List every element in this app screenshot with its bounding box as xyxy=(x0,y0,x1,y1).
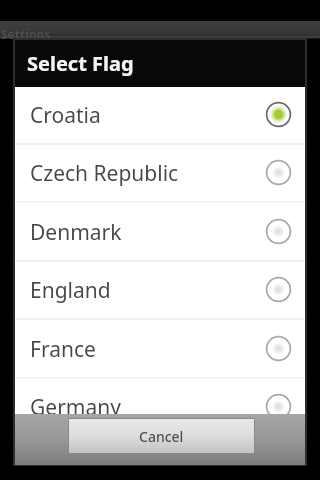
staticText: France xyxy=(30,335,265,364)
staticText: Select Flag xyxy=(27,50,134,77)
staticText: Croatia xyxy=(30,101,265,130)
button[interactable]: Cancel xyxy=(69,419,254,453)
staticText: Czech Republic xyxy=(30,159,265,188)
button[interactable]: Czech Republic xyxy=(15,145,305,203)
button[interactable]: Croatia xyxy=(15,87,305,145)
button[interactable]: France xyxy=(15,321,305,379)
button[interactable]: Germany xyxy=(15,379,305,437)
other: Not selected xyxy=(265,159,292,186)
staticText: Denmark xyxy=(30,218,265,247)
staticText: England xyxy=(30,276,265,305)
staticText: Settings xyxy=(1,26,51,42)
other: Selected xyxy=(265,101,292,128)
button[interactable]: England xyxy=(15,262,305,320)
other: Not selected xyxy=(265,276,292,303)
other: Not selected xyxy=(265,218,292,245)
button[interactable]: Denmark xyxy=(15,204,305,262)
other: Not selected xyxy=(265,335,292,362)
other: Not selected xyxy=(265,393,292,420)
staticText: Germany xyxy=(30,393,265,422)
staticText: Cancel xyxy=(139,427,184,446)
